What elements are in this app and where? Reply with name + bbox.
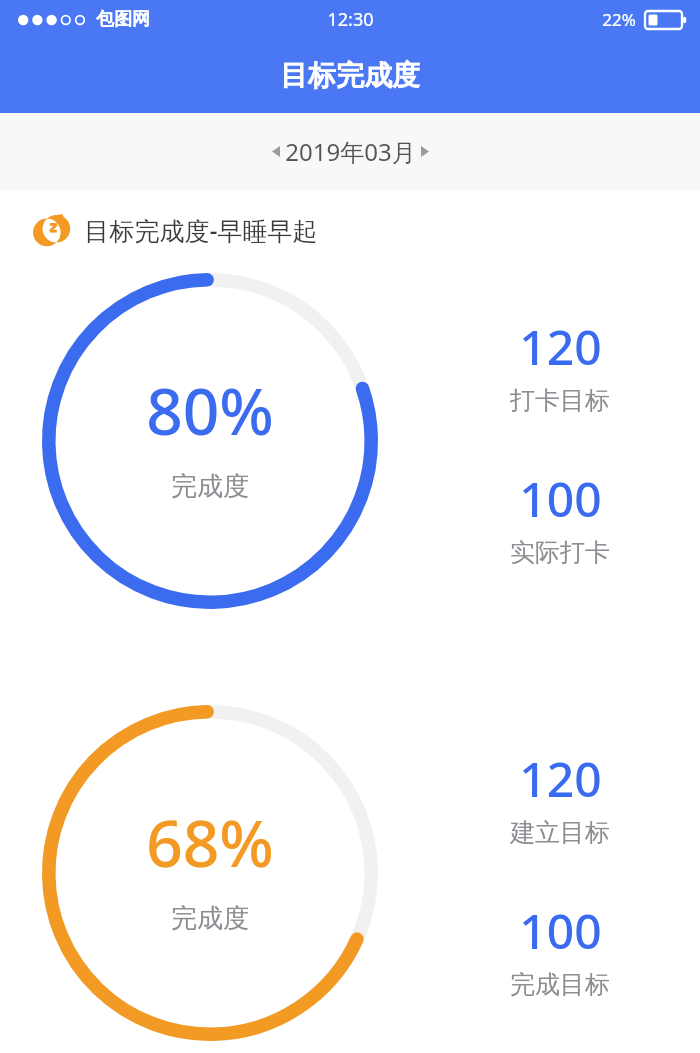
staticText: 目标完成度-早睡早起	[84, 213, 318, 247]
staticText: 完成度	[171, 902, 249, 935]
button[interactable]: 100	[502, 896, 618, 1002]
staticText: 打卡目标	[510, 385, 610, 416]
staticText: 建立目标	[510, 817, 610, 848]
staticText: 100	[519, 466, 602, 531]
button[interactable]: 100	[502, 464, 618, 570]
staticText: 包图网	[96, 8, 150, 31]
button[interactable]: Next month	[416, 138, 434, 165]
staticText: 22%	[602, 8, 636, 31]
staticText: 2019年03月	[285, 135, 416, 168]
staticText: 完成目标	[510, 969, 610, 1000]
staticText: 实际打卡	[510, 537, 610, 568]
button[interactable]: Previous month	[267, 138, 285, 165]
staticText: 120	[519, 746, 602, 811]
staticText: 完成度	[171, 470, 249, 503]
button[interactable]: 120	[502, 312, 618, 418]
button[interactable]: 目标完成度-早睡早起	[0, 206, 700, 254]
button[interactable]: 120	[502, 744, 618, 850]
staticText: 100	[519, 898, 602, 963]
staticText: 68%	[146, 799, 274, 886]
staticText: 120	[519, 314, 602, 379]
staticText: 12:30	[327, 7, 374, 32]
staticText: 80%	[146, 367, 274, 454]
staticText: 目标完成度	[280, 58, 420, 93]
